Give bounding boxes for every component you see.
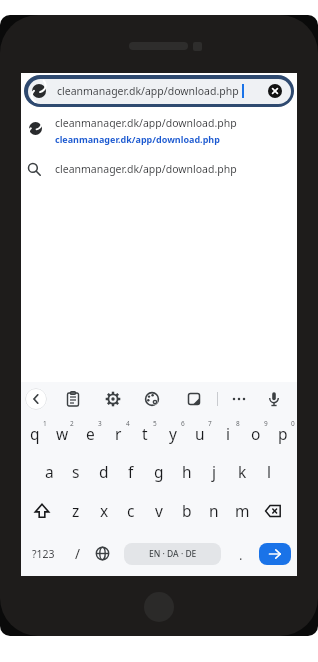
button[interactable]: c bbox=[116, 498, 146, 522]
button[interactable] bbox=[91, 542, 115, 566]
button[interactable]: x bbox=[89, 498, 119, 522]
button[interactable]: t bbox=[130, 421, 160, 445]
button[interactable]: v bbox=[144, 498, 174, 522]
staticText: 4 bbox=[126, 419, 130, 428]
button[interactable] bbox=[268, 84, 282, 98]
staticText: b bbox=[182, 500, 192, 521]
button[interactable] bbox=[227, 387, 251, 411]
button[interactable] bbox=[261, 499, 285, 523]
staticText: x bbox=[100, 500, 109, 521]
button[interactable]: cleanmanager.dk/app/download.php bbox=[24, 75, 294, 107]
staticText: o bbox=[251, 423, 261, 444]
staticText: EN · DA · DE bbox=[149, 548, 197, 560]
button[interactable]: / bbox=[63, 542, 93, 566]
staticText: c bbox=[127, 500, 135, 521]
button[interactable] bbox=[30, 499, 54, 523]
button[interactable]: h bbox=[172, 459, 202, 483]
button[interactable]: EN · DA · DE bbox=[124, 543, 221, 565]
staticText: 9 bbox=[264, 419, 268, 428]
button[interactable]: cleanmanager.dk/app/download.php bbox=[21, 112, 297, 148]
staticText: 7 bbox=[208, 419, 212, 428]
button[interactable]: cleanmanager.dk/app/download.php bbox=[21, 155, 297, 183]
staticText: n bbox=[209, 500, 219, 521]
staticText: 0 bbox=[291, 419, 295, 428]
staticText: k bbox=[238, 461, 247, 482]
button[interactable] bbox=[140, 387, 164, 411]
button[interactable]: k bbox=[227, 459, 257, 483]
button[interactable] bbox=[144, 592, 174, 622]
button[interactable] bbox=[259, 543, 291, 565]
staticText: m bbox=[235, 500, 250, 521]
button[interactable]: m bbox=[227, 498, 257, 522]
button[interactable]: j bbox=[199, 459, 229, 483]
staticText: v bbox=[155, 500, 163, 521]
staticText: i bbox=[226, 423, 230, 444]
button[interactable]: z bbox=[61, 498, 91, 522]
staticText: p bbox=[278, 423, 288, 444]
staticText: h bbox=[182, 461, 192, 482]
staticText: cleanmanager.dk/app/download.php bbox=[55, 133, 220, 145]
button[interactable]: y bbox=[158, 421, 188, 445]
button[interactable] bbox=[262, 387, 286, 411]
staticText: s bbox=[72, 461, 80, 482]
staticText: u bbox=[195, 423, 205, 444]
staticText: f bbox=[128, 461, 134, 482]
staticText: q bbox=[30, 423, 40, 444]
button[interactable] bbox=[182, 387, 206, 411]
staticText: cleanmanager.dk/app/download.php bbox=[55, 162, 237, 176]
staticText: y bbox=[169, 423, 177, 444]
staticText: w bbox=[56, 423, 69, 444]
button[interactable]: o bbox=[241, 421, 271, 445]
button[interactable]: . bbox=[226, 543, 256, 567]
button[interactable]: s bbox=[61, 459, 91, 483]
staticText: z bbox=[72, 500, 80, 521]
button[interactable]: i bbox=[213, 421, 243, 445]
staticText: . bbox=[239, 546, 243, 564]
button[interactable] bbox=[25, 388, 47, 410]
staticText: d bbox=[99, 461, 109, 482]
button[interactable]: u bbox=[185, 421, 215, 445]
button[interactable]: a bbox=[34, 459, 64, 483]
staticText: l bbox=[267, 461, 271, 482]
staticText: 6 bbox=[181, 419, 185, 428]
button[interactable]: d bbox=[89, 459, 119, 483]
staticText: cleanmanager.dk/app/download.php bbox=[55, 116, 237, 129]
staticText: 3 bbox=[98, 419, 102, 428]
staticText: g bbox=[154, 461, 164, 482]
staticText: e bbox=[86, 423, 95, 444]
staticText: a bbox=[45, 461, 54, 482]
button[interactable] bbox=[61, 387, 85, 411]
button[interactable]: n bbox=[199, 498, 229, 522]
staticText: j bbox=[212, 461, 216, 482]
staticText: cleanmanager.dk/app/download.php bbox=[57, 84, 239, 98]
staticText: 5 bbox=[153, 419, 157, 428]
button[interactable]: r bbox=[103, 421, 133, 445]
button[interactable]: l bbox=[254, 459, 284, 483]
staticText: t bbox=[142, 423, 148, 444]
button[interactable]: e bbox=[75, 421, 105, 445]
staticText: 1 bbox=[43, 419, 47, 428]
button[interactable]: b bbox=[172, 498, 202, 522]
button[interactable]: ?123 bbox=[28, 542, 58, 566]
staticText: 2 bbox=[70, 419, 74, 428]
button[interactable]: w bbox=[47, 421, 77, 445]
button[interactable]: g bbox=[144, 459, 174, 483]
staticText: / bbox=[75, 545, 81, 563]
staticText: r bbox=[115, 423, 122, 444]
button[interactable] bbox=[101, 387, 125, 411]
button[interactable]: q bbox=[20, 421, 50, 445]
staticText: 8 bbox=[236, 419, 240, 428]
button[interactable]: p bbox=[268, 421, 298, 445]
staticText: ?123 bbox=[32, 547, 55, 561]
button[interactable]: f bbox=[116, 459, 146, 483]
